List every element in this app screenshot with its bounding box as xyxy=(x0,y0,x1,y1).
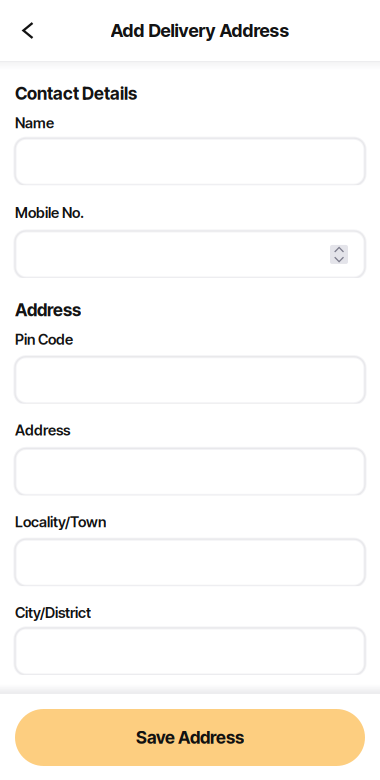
button[interactable]: Back xyxy=(8,8,48,52)
staticText: Name xyxy=(15,114,54,132)
staticText: Address xyxy=(15,299,81,320)
staticText: Pin Code xyxy=(15,330,73,348)
staticText: City/District xyxy=(15,604,91,621)
button[interactable]: Mobile No. xyxy=(15,231,365,278)
button[interactable]: Save Address xyxy=(15,709,365,766)
staticText: Contact Details xyxy=(15,83,137,104)
button[interactable]: Address xyxy=(15,448,365,495)
button[interactable]: City/District xyxy=(15,628,365,675)
staticText: Address xyxy=(15,421,70,439)
button[interactable]: Name xyxy=(15,138,365,185)
staticText: Save Address xyxy=(136,727,244,748)
staticText: Locality/Town xyxy=(15,513,106,531)
button[interactable]: Step mobile number xyxy=(330,245,365,264)
button[interactable]: Pin Code xyxy=(15,357,365,404)
staticText: Add Delivery Address xyxy=(110,20,289,41)
button[interactable]: Locality/Town xyxy=(15,539,365,586)
staticText: Mobile No. xyxy=(15,204,84,221)
